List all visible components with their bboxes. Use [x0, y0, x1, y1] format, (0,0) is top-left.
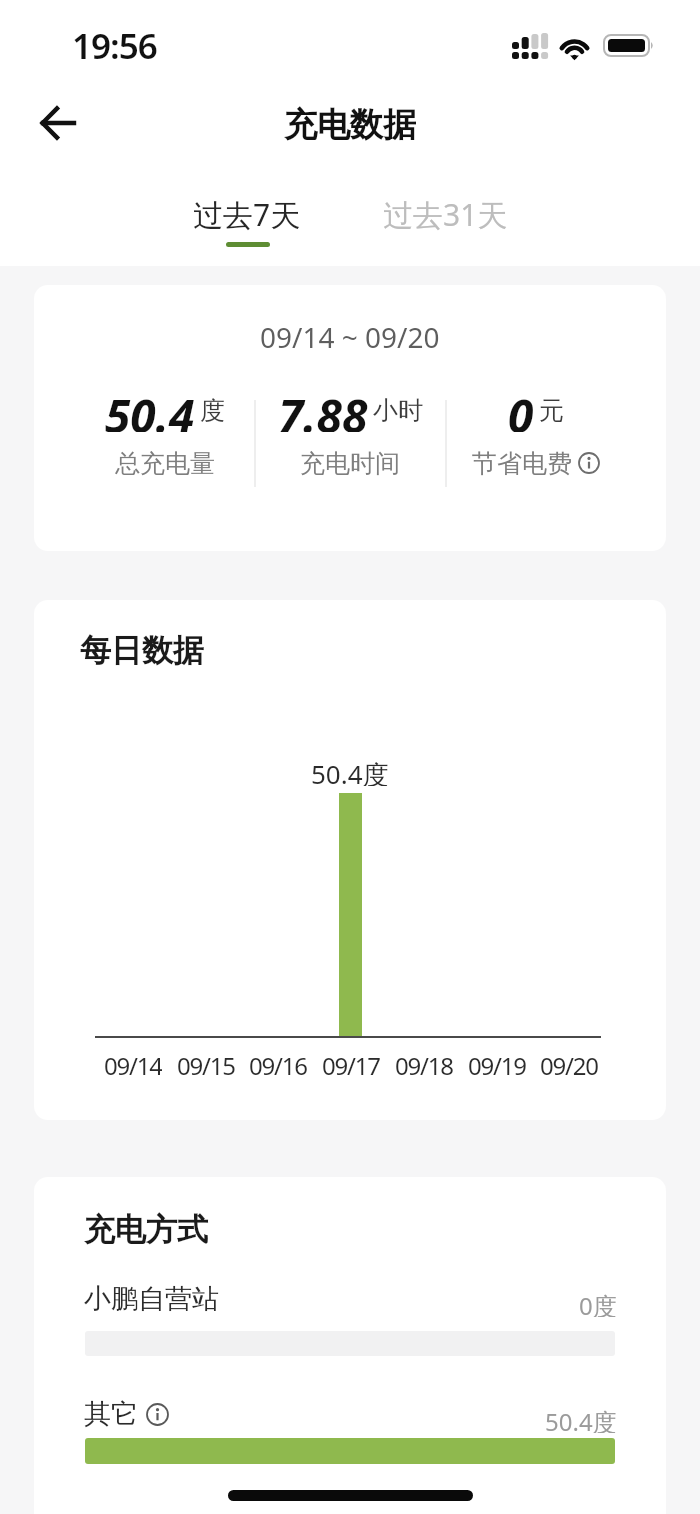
staticText: 总充电量 — [115, 448, 215, 478]
staticText: 元 — [539, 395, 564, 426]
staticText: 7.88 — [278, 384, 368, 432]
staticText: 节省电费 — [472, 448, 572, 478]
staticText: 每日数据 — [80, 631, 204, 670]
staticText: 其它 — [84, 1397, 138, 1431]
staticText: 小时 — [373, 395, 423, 426]
button[interactable] — [578, 452, 600, 474]
staticText: 09/20 — [540, 1049, 598, 1079]
staticText: 50.4 — [105, 384, 195, 432]
staticText: 过去7天 — [193, 194, 301, 235]
button[interactable]: 过去31天 — [381, 192, 509, 236]
staticText: 09/15 — [177, 1049, 235, 1079]
staticText: 充电数据 — [284, 104, 416, 144]
staticText: 小鹏自营站 — [84, 1282, 219, 1316]
staticText: 过去31天 — [383, 194, 508, 235]
staticText: 09/19 — [468, 1049, 526, 1079]
staticText: 09/18 — [395, 1049, 453, 1079]
staticText: 50.4度 — [545, 1405, 617, 1433]
staticText: 0 — [508, 384, 534, 432]
button[interactable] — [146, 1403, 169, 1426]
staticText: 09/17 — [322, 1049, 380, 1079]
staticText: 09/16 — [249, 1049, 307, 1079]
button[interactable]: 过去7天 — [183, 192, 311, 236]
staticText: 充电方式 — [84, 1210, 208, 1249]
staticText: 50.4度 — [311, 756, 389, 786]
staticText: 09/14 ~ 09/20 — [260, 318, 440, 350]
staticText: 度 — [200, 395, 225, 426]
staticText: 充电时间 — [300, 448, 400, 478]
button[interactable] — [30, 98, 86, 148]
staticText: 0度 — [579, 1289, 617, 1317]
staticText: 09/14 — [104, 1049, 162, 1079]
staticText: 19:56 — [72, 22, 157, 70]
